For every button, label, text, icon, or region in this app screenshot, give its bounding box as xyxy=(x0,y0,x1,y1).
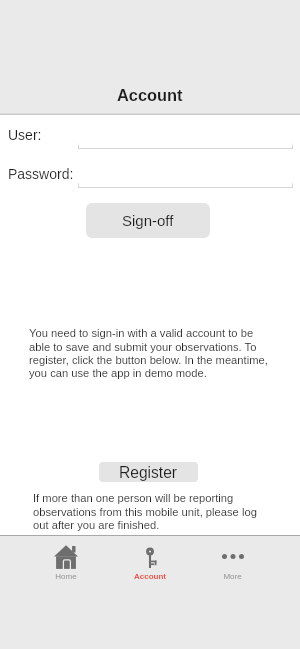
staticText: Home xyxy=(55,572,77,581)
staticText: Password: xyxy=(8,166,74,182)
button[interactable]: Register xyxy=(99,462,198,482)
staticText: If more than one person will be reportin… xyxy=(33,492,267,531)
staticText: Sign-off xyxy=(122,212,174,229)
button[interactable] xyxy=(78,165,293,188)
button[interactable]: Account xyxy=(108,541,191,586)
staticText: Account xyxy=(134,572,166,581)
staticText: More xyxy=(223,572,242,581)
staticText: User: xyxy=(8,127,42,143)
staticText: Register xyxy=(119,464,178,481)
button[interactable]: More xyxy=(191,541,274,586)
button[interactable]: Home xyxy=(24,541,108,586)
staticText: You need to sign-in with a valid account… xyxy=(29,327,273,379)
staticText: Account xyxy=(117,86,183,104)
button[interactable]: Sign-off xyxy=(86,203,210,238)
button[interactable] xyxy=(78,126,293,149)
